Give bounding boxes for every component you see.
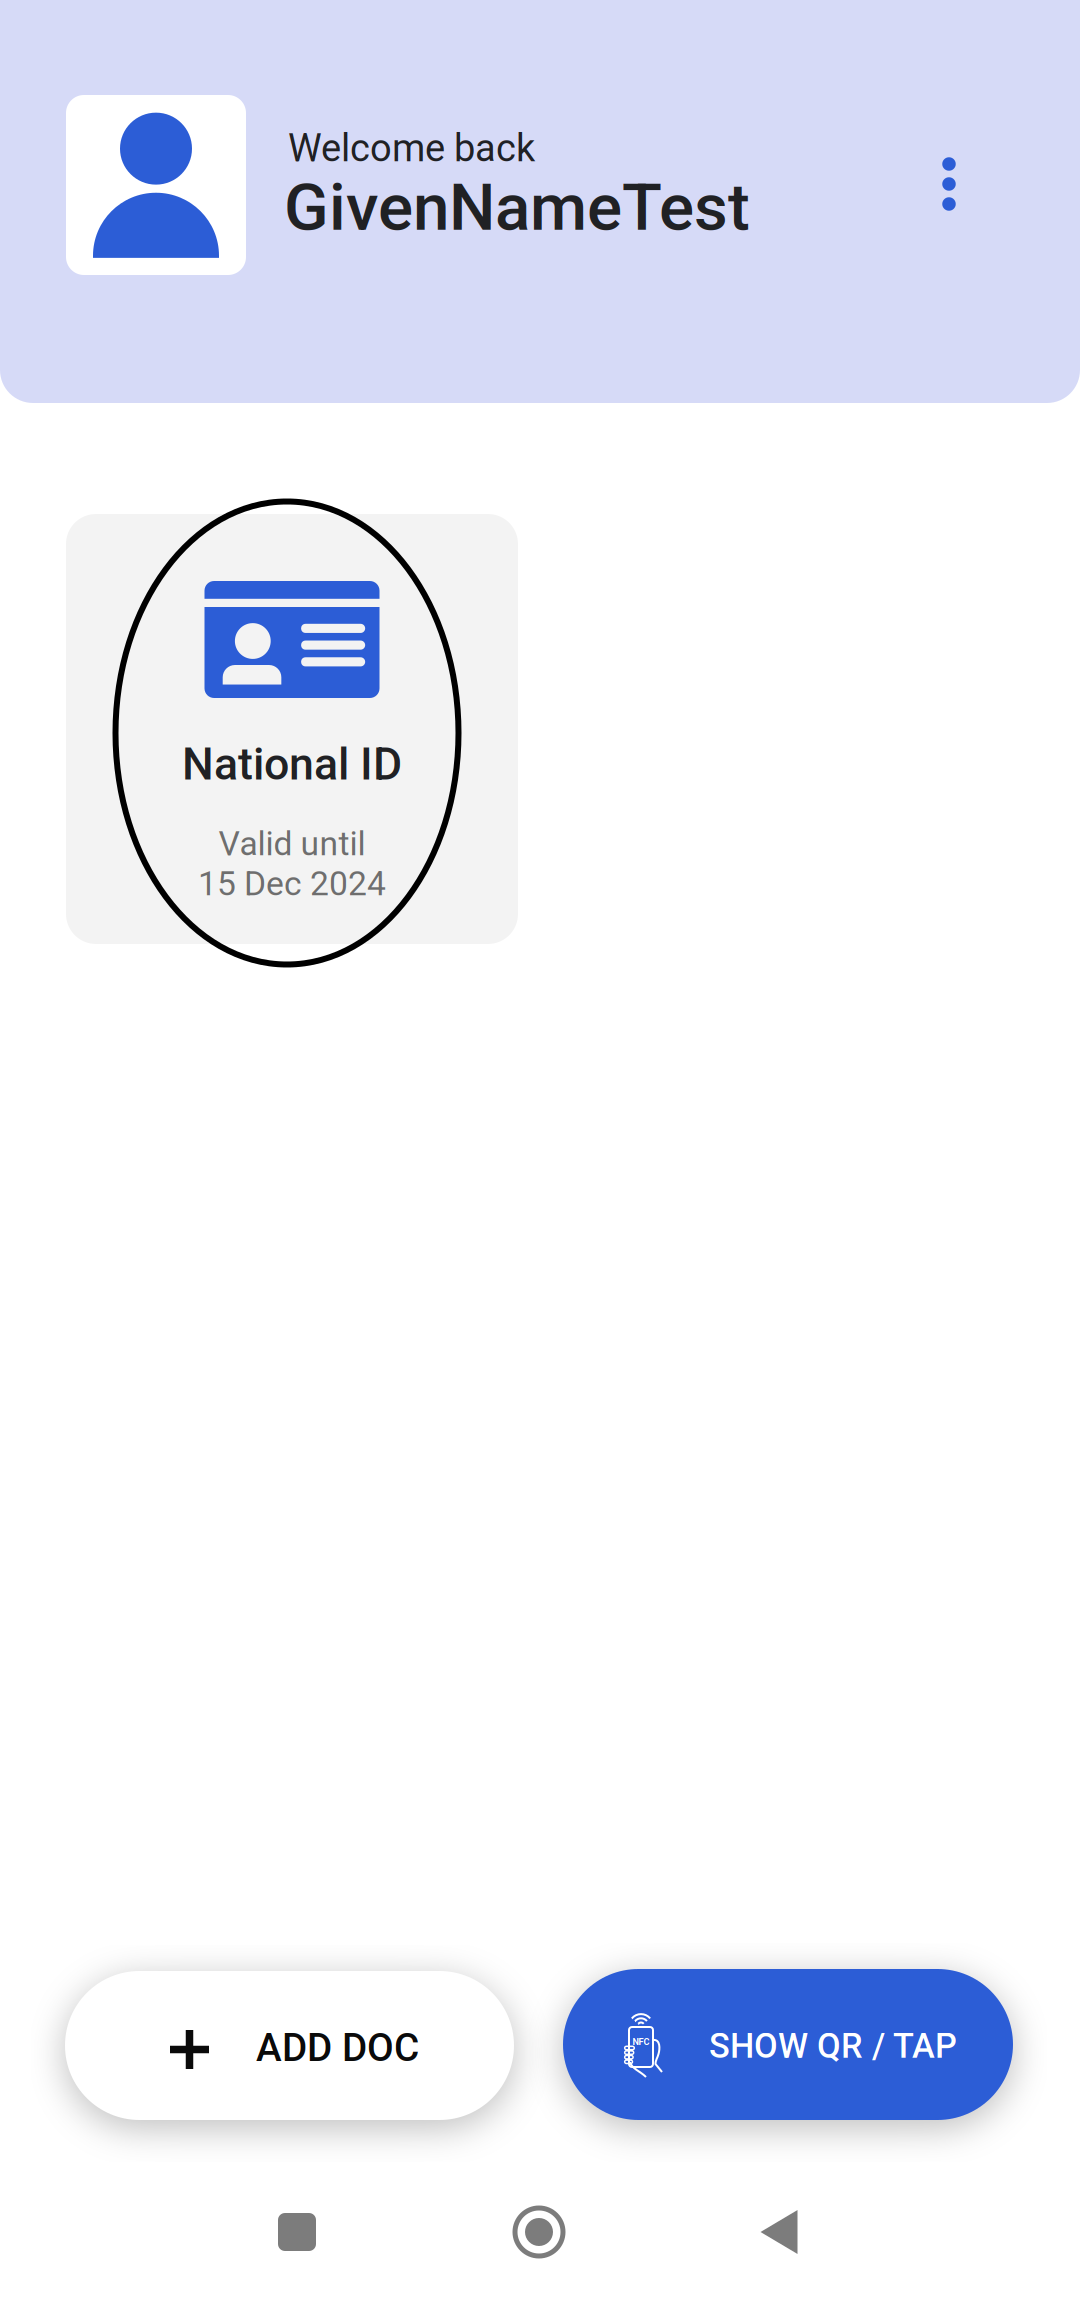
button[interactable]: Show QR / Tap	[563, 1969, 1013, 2120]
button[interactable]: Back	[714, 2187, 844, 2277]
button[interactable]: More options	[903, 132, 995, 236]
staticText: National ID	[182, 738, 402, 790]
staticText: NFC	[632, 2036, 649, 2047]
staticText: 15 Dec 2024	[198, 864, 386, 903]
button[interactable]: ADD DOC	[65, 1971, 514, 2120]
button[interactable]: Recents	[232, 2187, 362, 2277]
staticText: Welcome back	[288, 126, 535, 170]
button[interactable]: Home	[474, 2187, 604, 2277]
staticText: SHOW QR / TAP	[709, 2026, 957, 2066]
staticText: Valid until	[218, 824, 365, 863]
button[interactable]: National ID	[66, 514, 518, 944]
staticText: ADD DOC	[256, 2025, 419, 2070]
staticText: GivenNameTest	[284, 169, 750, 246]
